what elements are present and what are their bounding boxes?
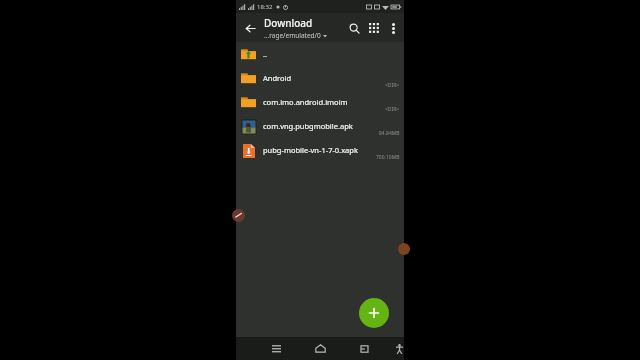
staticText: com.vng.pubgmobile.apk <box>263 121 400 131</box>
staticText: 18:32 <box>257 3 273 11</box>
button[interactable]: Back <box>352 337 376 360</box>
button[interactable]: Android <box>236 66 404 90</box>
button[interactable]: pubg-mobile-vn-1-7-0.xapk <box>236 138 404 162</box>
button[interactable]: More options <box>384 19 402 37</box>
button[interactable]: Accessibility <box>394 337 404 360</box>
staticText: .. <box>263 49 400 59</box>
staticText: Download <box>264 16 313 30</box>
button[interactable]: com.imo.android.imoim <box>236 90 404 114</box>
staticText: pubg-mobile-vn-1-7-0.xapk <box>263 145 400 155</box>
staticText: 700.10MB <box>376 154 400 161</box>
staticText: ...rage/emulated/0 <box>264 31 321 40</box>
button[interactable]: Quick action <box>232 209 245 222</box>
button[interactable]: Quick action right <box>398 243 410 255</box>
button[interactable]: Back <box>240 18 260 38</box>
button[interactable]: com.vng.pubgmobile.apk <box>236 114 404 138</box>
button[interactable]: Add <box>359 298 389 328</box>
button[interactable]: Recents <box>264 337 288 360</box>
button[interactable]: Home <box>308 337 332 360</box>
staticText: Android <box>263 73 400 83</box>
staticText: com.imo.android.imoim <box>263 97 400 107</box>
button[interactable]: Grid view <box>364 18 384 38</box>
staticText: <DIR> <box>385 82 400 89</box>
button[interactable]: Search <box>344 18 364 38</box>
staticText: <DIR> <box>385 106 400 113</box>
button[interactable]: .. <box>236 42 404 66</box>
staticText: 84.84MB <box>379 130 400 137</box>
